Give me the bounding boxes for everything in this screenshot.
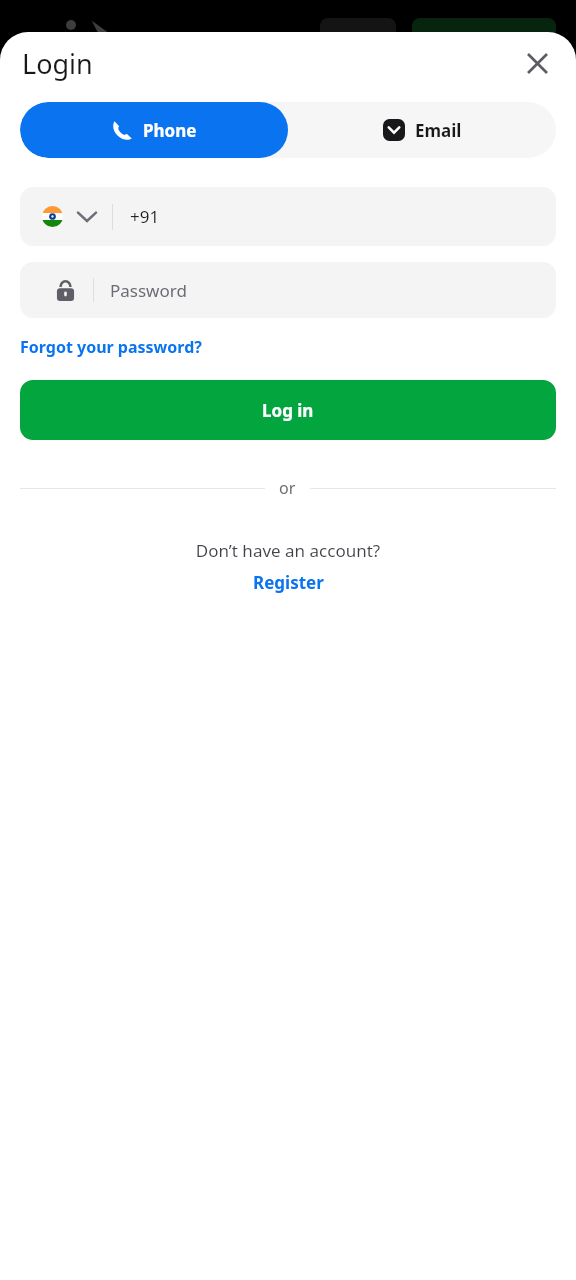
- button[interactable]: Forgot your password?: [20, 332, 202, 362]
- staticText: Login: [22, 45, 93, 82]
- button[interactable]: Close: [517, 43, 557, 83]
- staticText: +91: [130, 205, 160, 228]
- button[interactable]: Log in: [20, 380, 556, 440]
- staticText: Forgot your password?: [20, 336, 202, 358]
- button[interactable]: Register: [243, 568, 334, 597]
- button[interactable]: Email: [288, 102, 556, 158]
- button[interactable]: +91: [20, 187, 556, 246]
- staticText: or: [279, 477, 296, 499]
- button[interactable]: Password: [20, 262, 556, 318]
- button[interactable]: Phone: [20, 102, 288, 158]
- staticText: Log in: [262, 399, 314, 422]
- staticText: Register: [253, 571, 324, 594]
- staticText: Phone: [143, 119, 197, 142]
- staticText: Email: [415, 119, 462, 142]
- staticText: Don’t have an account?: [0, 539, 576, 562]
- staticText: Password: [110, 279, 187, 302]
